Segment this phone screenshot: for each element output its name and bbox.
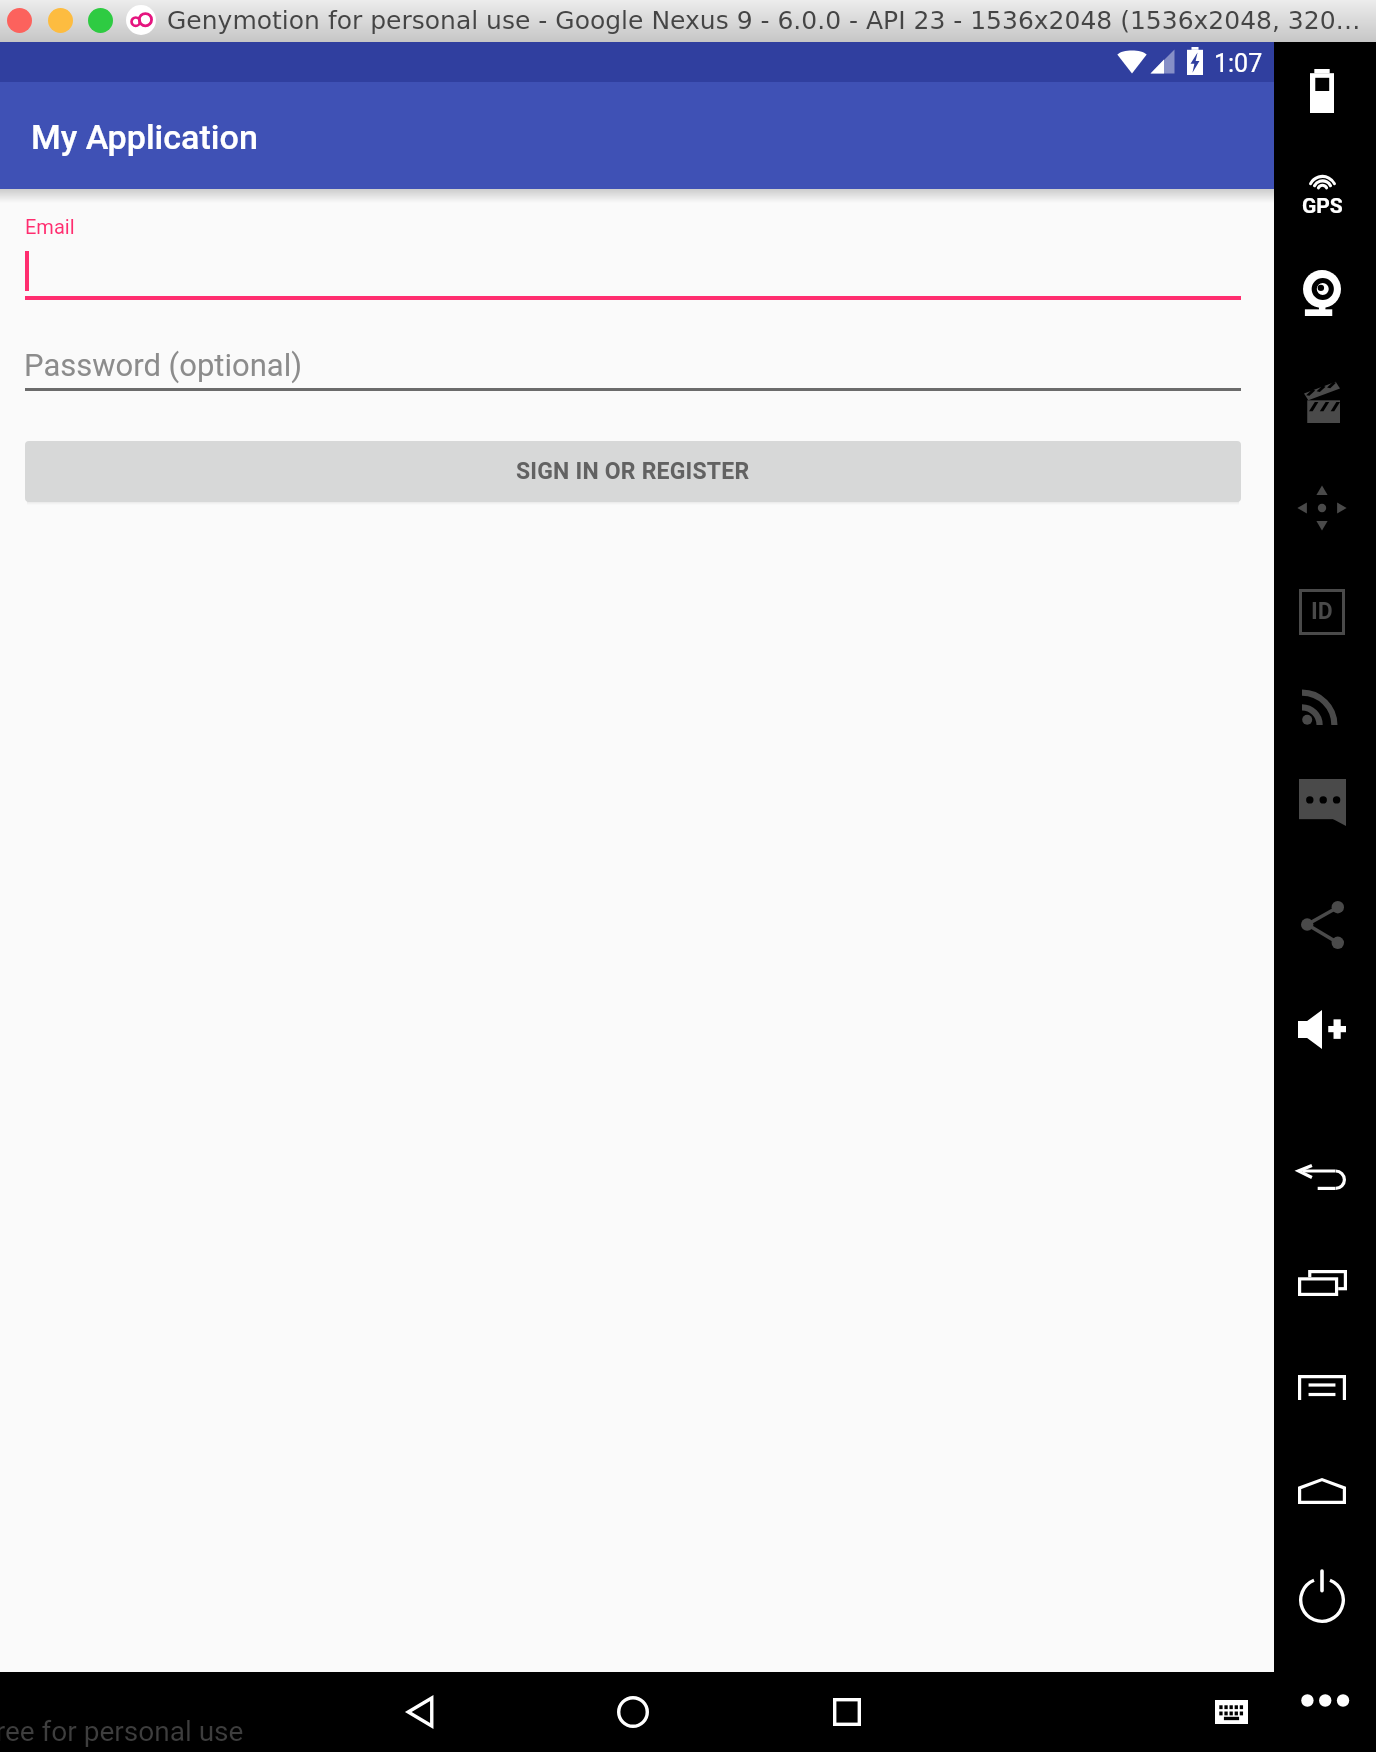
staticText: ID <box>1311 598 1333 625</box>
staticText: SIGN IN OR REGISTER <box>516 458 750 485</box>
button[interactable]: Email <box>25 209 1241 300</box>
button[interactable]: Accelerometer <box>1274 460 1370 556</box>
button[interactable]: Battery <box>1274 43 1370 139</box>
button[interactable]: GPS <box>1274 146 1370 242</box>
button[interactable]: Home <box>589 1672 677 1752</box>
button[interactable]: Identifiers <box>1274 564 1370 660</box>
button[interactable]: More options <box>1292 1672 1358 1728</box>
button[interactable]: Camera <box>1274 245 1370 341</box>
button[interactable]: Window control <box>48 8 73 33</box>
button[interactable]: Recents <box>803 1672 891 1752</box>
button[interactable]: Keyboard <box>1191 1672 1271 1752</box>
staticText: Genymotion for personal use - Google Nex… <box>167 6 1361 35</box>
staticText: GPS <box>1302 194 1343 219</box>
button[interactable]: Home <box>1274 1443 1370 1539</box>
staticText: Password (optional) <box>24 347 302 383</box>
staticText: My Application <box>31 117 258 157</box>
button[interactable]: Screen record <box>1274 354 1370 450</box>
staticText: 1:07 <box>1214 49 1263 78</box>
button[interactable]: Network <box>1274 657 1370 753</box>
button[interactable]: Menu <box>1274 1339 1370 1435</box>
button[interactable]: Recents <box>1274 1235 1370 1331</box>
button[interactable]: Window control <box>88 8 113 33</box>
button[interactable]: SIGN IN OR REGISTER <box>25 441 1241 502</box>
button[interactable]: Volume up <box>1274 981 1370 1077</box>
button[interactable]: Power <box>1274 1549 1370 1645</box>
staticText: free for personal use <box>0 1715 244 1748</box>
button[interactable]: Window control <box>7 8 32 33</box>
button[interactable]: Back <box>1274 1130 1370 1226</box>
button[interactable]: Messages <box>1274 754 1370 850</box>
button[interactable]: Share <box>1274 877 1370 973</box>
button[interactable]: Back <box>376 1672 464 1752</box>
staticText: Email <box>25 215 75 238</box>
button[interactable]: Password (optional) <box>25 339 1241 391</box>
